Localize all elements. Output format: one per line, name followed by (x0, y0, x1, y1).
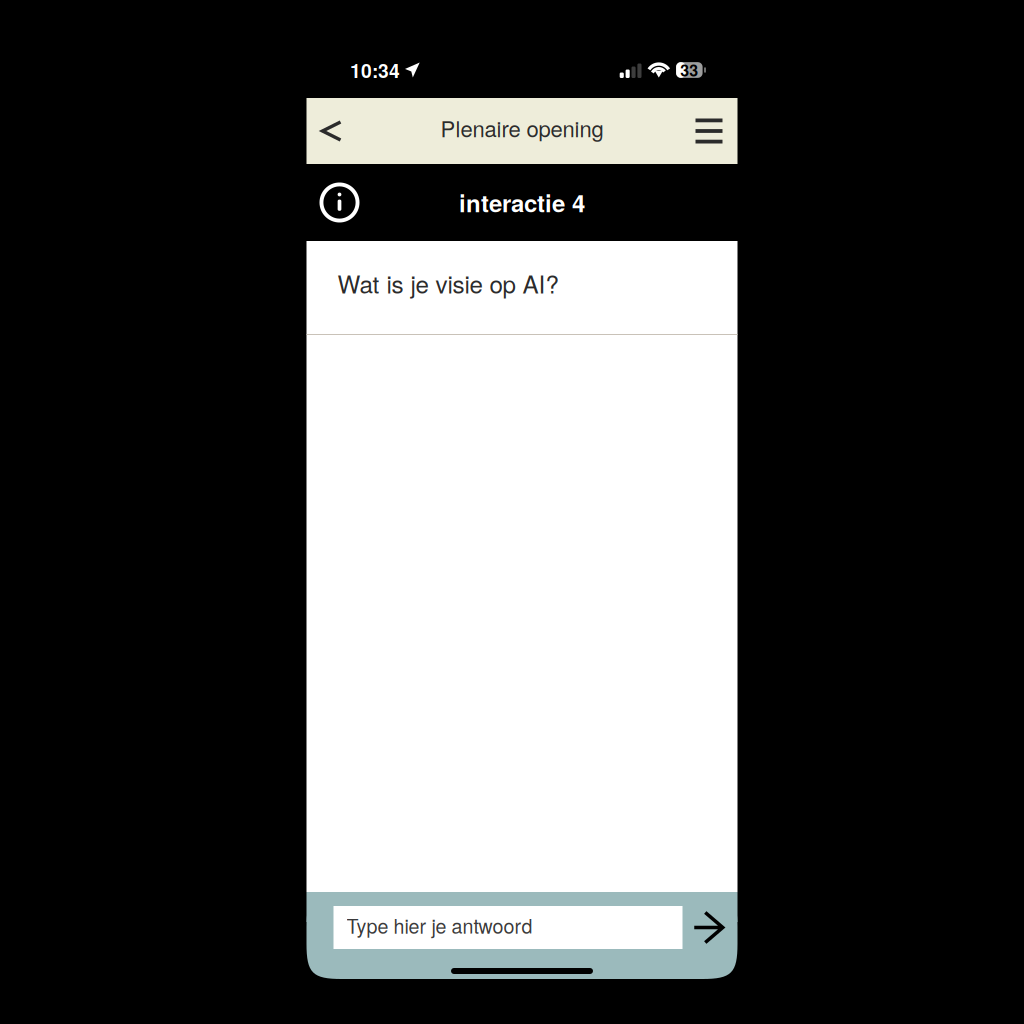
button[interactable]: Back (306, 98, 356, 164)
staticText: 33 (680, 58, 698, 81)
staticText: 10:34 (350, 56, 400, 84)
staticText: Plenaire opening (440, 112, 603, 143)
staticText: Wat is je visie op AI? (337, 266, 558, 300)
button[interactable]: Type hier je antwoord (333, 906, 682, 949)
button[interactable]: Send answer (685, 906, 731, 949)
staticText: interactie 4 (459, 185, 585, 220)
staticText: Type hier je antwoord (346, 911, 532, 939)
button[interactable]: Information (308, 164, 370, 241)
button[interactable]: Menu (684, 98, 734, 164)
